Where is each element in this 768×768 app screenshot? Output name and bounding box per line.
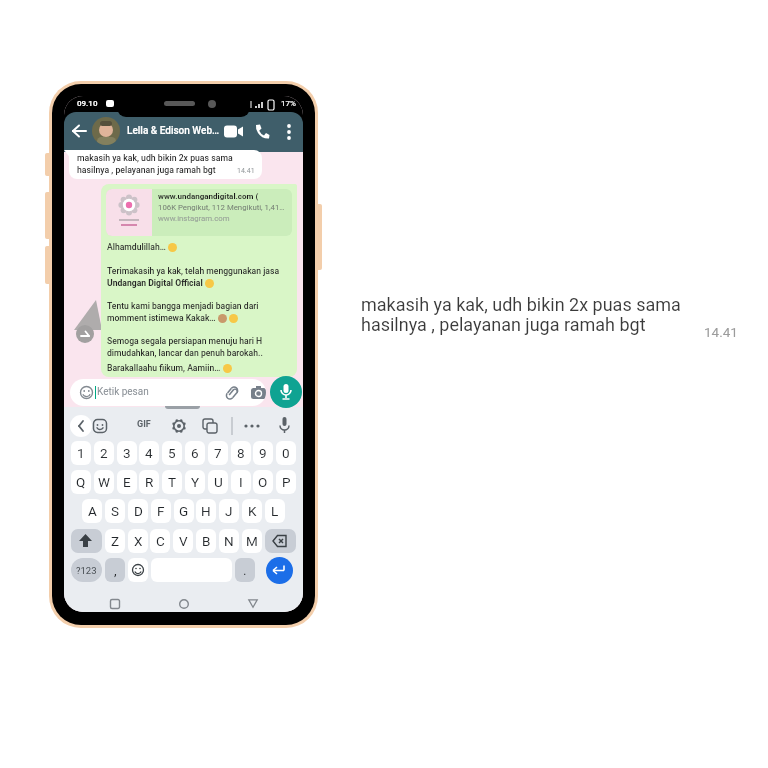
button[interactable] [278,417,291,435]
button[interactable]: E [117,470,137,494]
button[interactable]: V [173,529,193,553]
button[interactable] [172,419,186,433]
staticText: Z [111,533,120,549]
staticText: H [201,503,211,519]
staticText: J [225,503,233,519]
button[interactable]: W [94,470,114,494]
staticText: B [202,533,211,549]
button[interactable]: 1 [71,441,91,465]
staticText: R [145,474,154,490]
button[interactable] [179,599,189,609]
button[interactable] [93,419,107,433]
button[interactable] [203,419,217,433]
button[interactable]: Ketik pesan [70,379,266,406]
button[interactable] [248,599,258,608]
staticText: 0 [282,445,290,461]
staticText: U [214,474,223,490]
button[interactable]: 8 [231,441,251,465]
staticText: 1 [77,445,85,461]
button[interactable]: 2 [94,441,114,465]
staticText: T [168,474,177,490]
button[interactable]: www.undangandigital.com ( [101,184,297,377]
button[interactable]: 9 [253,441,273,465]
button[interactable]: 7 [208,441,228,465]
button[interactable]: S [105,499,125,523]
button[interactable]: I [231,470,251,494]
button[interactable]: F [151,499,171,523]
staticText: 17% [281,99,296,108]
staticText: L [271,503,279,519]
staticText: makasih ya kak, udh bikin 2x puas sama [77,153,233,163]
button[interactable]: 5 [162,441,182,465]
staticText: O [258,474,268,490]
button[interactable]: N [219,529,239,553]
button[interactable]: H [196,499,216,523]
button[interactable]: A [82,499,102,523]
button[interactable]: 3 [117,441,137,465]
button[interactable]: Y [185,470,205,494]
staticText: 6 [191,445,199,461]
button[interactable] [110,599,120,609]
staticText: Lella & Edison Web… [127,125,220,137]
staticText: makasih ya kak, udh bikin 2x puas sama [361,294,681,315]
staticText: K [248,503,257,519]
button[interactable]: ?123 [71,558,102,582]
button[interactable]: M [242,529,262,553]
staticText: . [243,562,247,578]
button[interactable]: K [242,499,262,523]
button[interactable]: makasih ya kak, udh bikin 2x puas sama [69,150,262,179]
button[interactable] [244,424,260,428]
staticText: , [114,562,117,578]
staticText: ?123 [76,565,97,576]
button[interactable] [270,376,302,408]
button[interactable] [266,557,293,584]
button[interactable]: . [235,558,255,582]
button[interactable]: U [208,470,228,494]
button[interactable] [224,125,243,138]
staticText: Alhamdulillah… [107,242,166,252]
button[interactable] [286,123,292,141]
button[interactable]: G [174,499,194,523]
button[interactable]: , [105,558,125,582]
staticText: Barakallaahu fiikum, Aamiin… [107,363,221,373]
staticText: 9 [259,445,267,461]
button[interactable]: J [219,499,239,523]
staticText: 2 [100,445,108,461]
button[interactable] [265,529,296,553]
staticText: G [179,503,189,519]
button[interactable]: makasih ya kak, udh bikin 2x puas sama [348,280,758,350]
staticText: I [239,474,243,490]
staticText: W [98,474,110,490]
button[interactable]: B [196,529,216,553]
button[interactable] [128,558,148,582]
staticText: Y [191,474,200,490]
button[interactable] [70,415,92,437]
button[interactable]: Z [105,529,125,553]
staticText: Terimakasih ya kak, telah menggunakan ja… [107,266,280,276]
button[interactable]: Q [71,470,91,494]
staticText: Undangan Digital Official [107,278,203,288]
button[interactable] [92,117,120,145]
button[interactable]: D [128,499,148,523]
button[interactable]: T [162,470,182,494]
button[interactable]: C [150,529,170,553]
button[interactable]: 6 [185,441,205,465]
staticText: D [134,503,143,519]
button[interactable] [255,124,270,139]
button[interactable]: 4 [139,441,159,465]
button[interactable]: P [276,470,296,494]
button[interactable] [72,124,88,138]
button[interactable]: X [128,529,148,553]
button[interactable]: 0 [276,441,296,465]
staticText: V [179,533,188,549]
button[interactable]: L [265,499,285,523]
staticText: www.undangandigital.com ( [158,192,259,201]
staticText: M [246,533,258,549]
staticText: F [157,503,165,519]
button[interactable]: O [253,470,273,494]
button[interactable] [64,112,303,152]
button[interactable]: R [139,470,159,494]
button[interactable] [71,529,102,553]
staticText: momment istimewa Kakak… [107,313,216,323]
